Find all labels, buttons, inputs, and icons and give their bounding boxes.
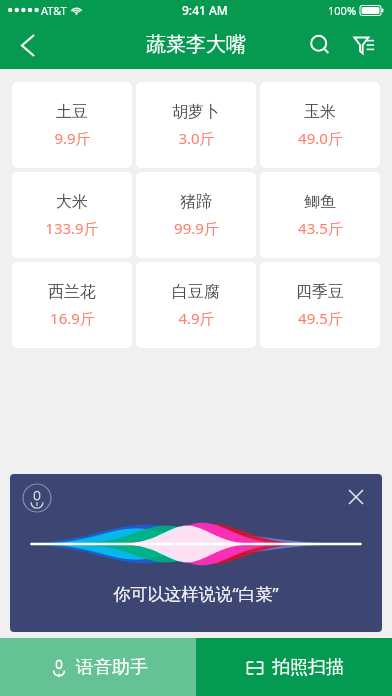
button[interactable]: Back bbox=[6, 23, 50, 67]
button[interactable]: 猪蹄 bbox=[136, 172, 256, 258]
staticText: 土豆 bbox=[56, 102, 88, 122]
staticText: 16.9斤 bbox=[50, 308, 95, 328]
staticText: 133.9斤 bbox=[45, 218, 99, 238]
staticText: AT&T bbox=[41, 3, 67, 18]
staticText: 9.9斤 bbox=[54, 128, 91, 148]
button[interactable]: 大米 bbox=[12, 172, 132, 258]
button[interactable]: 白豆腐 bbox=[136, 262, 256, 348]
button[interactable]: 土豆 bbox=[12, 82, 132, 168]
staticText: 100% bbox=[328, 3, 357, 18]
button[interactable]: Microphone bbox=[22, 483, 52, 513]
staticText: 9:41 AM bbox=[182, 2, 228, 18]
staticText: 白豆腐 bbox=[172, 282, 220, 302]
staticText: 胡萝卜 bbox=[172, 102, 220, 122]
staticText: 43.5斤 bbox=[298, 218, 343, 238]
staticText: 西兰花 bbox=[48, 282, 96, 302]
staticText: 蔬菜李大嘴 bbox=[146, 32, 246, 57]
staticText: 49.5斤 bbox=[298, 308, 343, 328]
staticText: 4.9斤 bbox=[178, 308, 215, 328]
staticText: 四季豆 bbox=[296, 282, 344, 302]
staticText: 玉米 bbox=[304, 102, 336, 122]
staticText: 拍照扫描 bbox=[272, 656, 344, 679]
button[interactable]: 语音助手 bbox=[0, 638, 196, 696]
button[interactable]: Filter bbox=[342, 23, 386, 67]
staticText: 猪蹄 bbox=[180, 192, 212, 212]
button[interactable]: Close bbox=[342, 483, 370, 511]
button[interactable]: 拍照扫描 bbox=[196, 638, 392, 696]
button[interactable]: 四季豆 bbox=[260, 262, 380, 348]
button[interactable]: 玉米 bbox=[260, 82, 380, 168]
staticText: 99.9斤 bbox=[174, 218, 219, 238]
staticText: 你可以这样说说“白菜” bbox=[113, 582, 279, 605]
button[interactable]: 西兰花 bbox=[12, 262, 132, 348]
staticText: 语音助手 bbox=[76, 656, 148, 679]
button[interactable]: 胡萝卜 bbox=[136, 82, 256, 168]
staticText: 大米 bbox=[56, 192, 88, 212]
button[interactable]: Search bbox=[298, 23, 342, 67]
staticText: 鲫鱼 bbox=[304, 192, 336, 212]
button[interactable]: 鲫鱼 bbox=[260, 172, 380, 258]
staticText: 3.0斤 bbox=[178, 128, 215, 148]
staticText: 49.0斤 bbox=[298, 128, 343, 148]
